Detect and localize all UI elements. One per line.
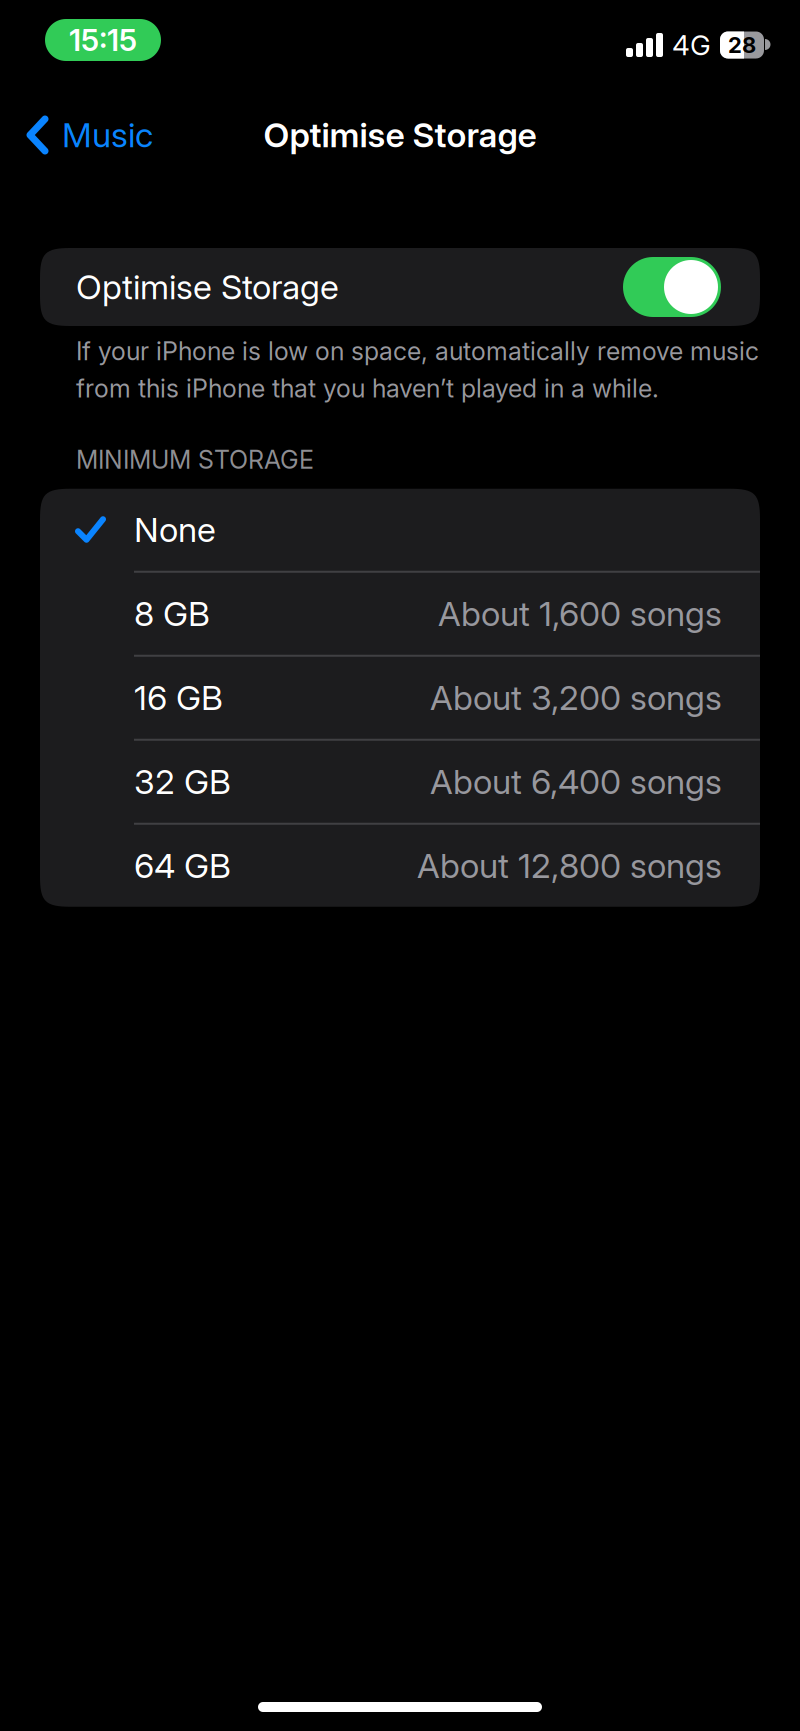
staticText: Optimise Storage — [263, 114, 536, 155]
staticText: None — [134, 509, 216, 550]
button[interactable]: 64 GB — [40, 825, 760, 907]
staticText: 4G — [672, 28, 711, 62]
button[interactable]: 15:15 — [45, 19, 161, 61]
button[interactable]: 32 GB — [40, 741, 760, 823]
staticText: About 3,200 songs — [430, 677, 722, 718]
staticText: 32 GB — [134, 761, 231, 802]
staticText: 28 — [728, 32, 756, 58]
button[interactable]: None — [40, 489, 760, 571]
staticText: from this iPhone that you haven’t played… — [76, 373, 659, 403]
staticText: About 6,400 songs — [430, 761, 722, 802]
button[interactable]: 16 GB — [40, 657, 760, 739]
staticText: 16 GB — [134, 677, 223, 718]
staticText: If your iPhone is low on space, automati… — [76, 336, 759, 366]
staticText: MINIMUM STORAGE — [76, 444, 314, 475]
staticText: About 12,800 songs — [417, 845, 722, 886]
button[interactable]: Music — [0, 114, 153, 155]
staticText: 15:15 — [69, 22, 137, 58]
staticText: Music — [62, 114, 153, 155]
staticText: About 1,600 songs — [438, 593, 722, 634]
button[interactable]: Optimise Storage — [40, 248, 760, 326]
staticText: 64 GB — [134, 845, 231, 886]
staticText: 8 GB — [134, 593, 210, 634]
staticText: Optimise Storage — [76, 266, 339, 307]
button[interactable]: 8 GB — [40, 573, 760, 655]
